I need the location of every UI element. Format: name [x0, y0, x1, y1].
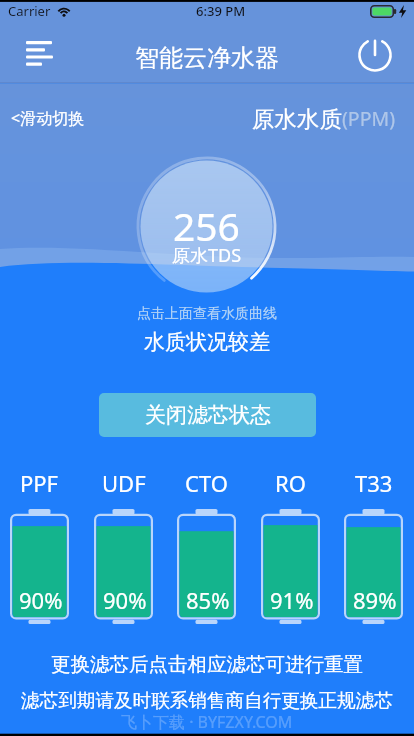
staticText: 91% — [270, 585, 314, 615]
button[interactable]: RO — [261, 468, 320, 624]
staticText: 原水水质 — [252, 105, 342, 133]
button[interactable]: UDF — [94, 468, 153, 624]
staticText: CTO — [185, 468, 228, 498]
staticText: 85% — [186, 585, 230, 615]
staticText: 智能云净水器 — [135, 43, 279, 73]
staticText: 关闭滤芯状态 — [145, 402, 271, 428]
staticText: 原水TDS — [172, 243, 242, 268]
staticText: 点击上面查看水质曲线 — [137, 305, 277, 323]
staticText: 6:39 PM — [196, 2, 246, 20]
button[interactable]: T33 — [344, 468, 403, 624]
staticText: 更换滤芯后点击相应滤芯可进行重置 — [51, 652, 363, 677]
button[interactable]: <滑动切换 — [11, 107, 85, 129]
staticText: RO — [275, 468, 306, 498]
staticText: 滤芯到期请及时联系销售商自行更换正规滤芯 — [21, 689, 393, 712]
button[interactable]: Power — [353, 33, 397, 77]
button[interactable]: Menu — [14, 32, 64, 74]
button[interactable]: PPF — [10, 468, 69, 624]
button[interactable]: 关闭滤芯状态 — [99, 393, 316, 437]
staticText: 89% — [353, 585, 397, 615]
staticText: Carrier — [8, 2, 51, 20]
staticText: 水质状况较差 — [144, 329, 270, 355]
staticText: 90% — [19, 585, 63, 615]
staticText: 飞卜下载 · BYFZXY.COM — [121, 711, 293, 733]
staticText: 256 — [173, 199, 240, 252]
staticText: (PPM) — [342, 105, 395, 132]
staticText: 90% — [103, 585, 147, 615]
button[interactable]: Water quality chart — [136, 156, 277, 297]
staticText: T33 — [355, 468, 393, 498]
staticText: UDF — [102, 468, 146, 498]
staticText: PPF — [20, 468, 59, 498]
button[interactable]: CTO — [177, 468, 236, 624]
